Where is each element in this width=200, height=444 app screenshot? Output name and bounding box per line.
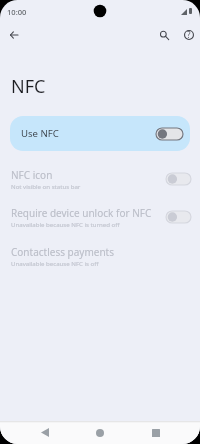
staticText: ? — [187, 29, 191, 40]
button[interactable]: Search — [154, 25, 175, 46]
button[interactable]: Use NFC — [10, 116, 190, 151]
staticText: Require device unlock for NFC — [11, 206, 152, 220]
button[interactable]: Home — [86, 421, 114, 444]
staticText: Unavailable because NFC is off — [11, 259, 99, 267]
staticText: Contactless payments — [11, 245, 115, 259]
button[interactable]: Contactless payments — [0, 241, 200, 279]
staticText: Unavailable because NFC is turned off — [11, 220, 120, 228]
button[interactable]: NFC icon — [0, 164, 200, 202]
staticText: NFC — [11, 74, 46, 99]
staticText: Use NFC — [21, 127, 59, 140]
staticText: Not visible on status bar — [11, 182, 81, 190]
button[interactable]: Help — [178, 24, 199, 45]
button[interactable]: Back — [3, 24, 24, 45]
staticText: NFC icon — [11, 168, 53, 182]
button[interactable]: Back — [31, 421, 87, 444]
button[interactable]: Recent apps — [142, 421, 170, 444]
button[interactable]: Require device unlock for NFC — [0, 202, 200, 240]
staticText: 10:00 — [7, 7, 27, 17]
